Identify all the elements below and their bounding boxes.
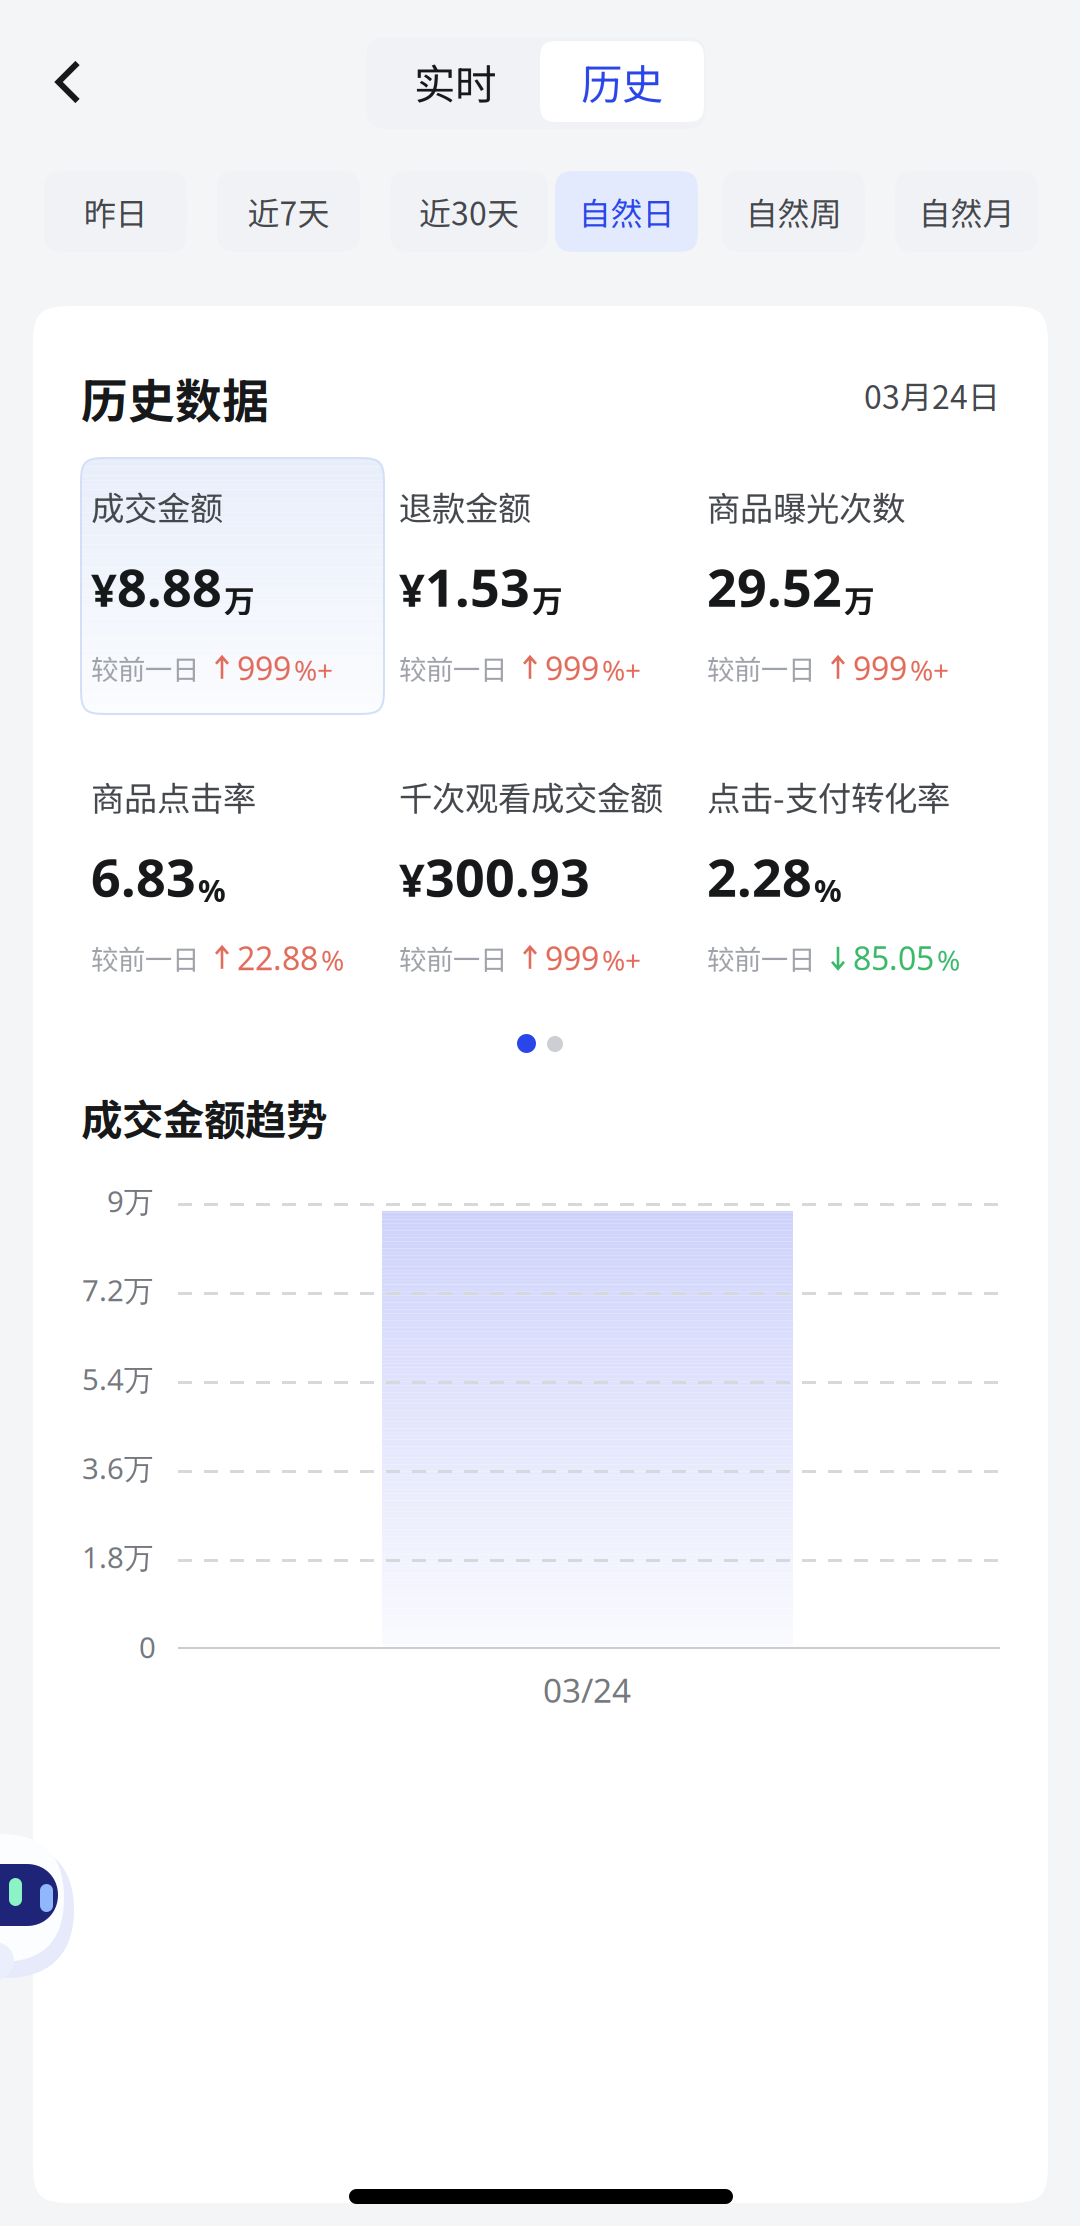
button[interactable]: 历史 [540, 41, 704, 122]
staticText: 昨日 [83, 188, 147, 235]
staticText: 较前一日 [707, 938, 815, 978]
staticText: 8.88 [117, 551, 222, 622]
staticText: 自然日 [578, 188, 674, 235]
button[interactable]: 商品曝光次数 [697, 458, 1000, 714]
button[interactable]: 退款金额 [389, 458, 692, 714]
staticText: 999 [545, 936, 599, 980]
staticText: 退款金额 [399, 482, 531, 530]
staticText: 万 [844, 577, 875, 621]
button[interactable]: Back [24, 35, 112, 129]
button[interactable]: 近7天 [217, 171, 360, 252]
staticText: %+ [910, 651, 949, 689]
staticText: 近30天 [419, 188, 519, 235]
button[interactable]: 千次观看成交金额 [389, 748, 692, 1004]
staticText: 03月24日 [864, 372, 1000, 418]
staticText: 5.4万 [82, 1359, 153, 1399]
staticText: 较前一日 [399, 648, 507, 688]
staticText: 较前一日 [707, 648, 815, 688]
staticText: 9万 [107, 1181, 153, 1221]
staticText: 商品曝光次数 [707, 482, 905, 530]
staticText: 万 [224, 577, 255, 621]
staticText: 7.2万 [82, 1270, 153, 1310]
staticText: 自然周 [745, 188, 841, 235]
staticText: 万 [532, 577, 563, 621]
staticText: 实时 [414, 52, 496, 111]
staticText: %+ [294, 651, 333, 689]
staticText: ¥ [399, 558, 425, 620]
staticText: 29.52 [707, 551, 842, 622]
staticText: 300.93 [425, 841, 590, 912]
button[interactable]: 商品点击率 [81, 748, 384, 1004]
button[interactable]: 成交金额 [81, 458, 384, 714]
button[interactable]: 自然月 [895, 171, 1038, 252]
staticText: 历史 [581, 52, 663, 111]
staticText: 2.28 [707, 841, 812, 912]
staticText: % [937, 941, 960, 979]
staticText: 千次观看成交金额 [399, 772, 663, 820]
button[interactable]: 点击-支付转化率 [697, 748, 1000, 1004]
button[interactable]: 自然周 [722, 171, 865, 252]
staticText: 999 [237, 646, 291, 690]
staticText: 商品点击率 [91, 772, 256, 820]
staticText: 较前一日 [91, 648, 199, 688]
staticText: 自然月 [918, 188, 1014, 235]
staticText: 点击-支付转化率 [707, 772, 950, 820]
staticText: %+ [602, 651, 641, 689]
staticText: % [198, 869, 226, 911]
button[interactable]: 自然日 [555, 171, 698, 252]
button[interactable]: 昨日 [44, 171, 187, 252]
staticText: 历史数据 [81, 364, 269, 432]
staticText: 999 [853, 646, 907, 690]
button[interactable]: 实时 [370, 41, 540, 122]
staticText: ¥ [399, 848, 425, 910]
staticText: 1.53 [425, 551, 530, 622]
staticText: % [814, 869, 842, 911]
staticText: 成交金额趋势 [81, 1087, 327, 1147]
button[interactable]: 近30天 [390, 171, 548, 252]
staticText: ¥ [91, 558, 117, 620]
staticText: 999 [545, 646, 599, 690]
staticText: 85.05 [853, 936, 934, 980]
staticText: %+ [602, 941, 641, 979]
staticText: 6.83 [91, 841, 196, 912]
button[interactable]: Assistant [0, 1830, 96, 2000]
staticText: 22.88 [237, 936, 318, 980]
staticText: 03/24 [543, 1667, 631, 1712]
staticText: 0 [139, 1627, 156, 1667]
staticText: 近7天 [247, 188, 329, 235]
staticText: % [321, 941, 344, 979]
staticText: 较前一日 [91, 938, 199, 978]
staticText: 较前一日 [399, 938, 507, 978]
staticText: 3.6万 [82, 1448, 153, 1488]
staticText: 1.8万 [82, 1537, 153, 1577]
staticText: 成交金额 [91, 482, 223, 530]
